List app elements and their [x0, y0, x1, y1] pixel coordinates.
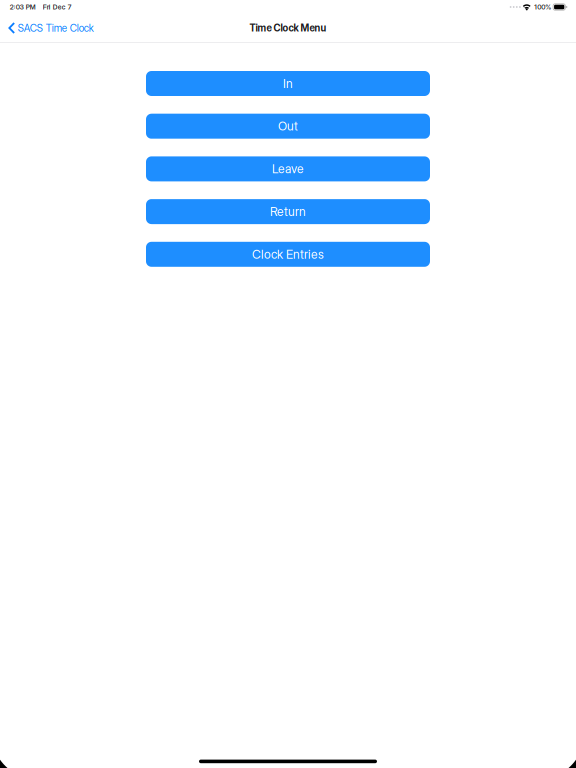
button[interactable]: Leave	[146, 156, 430, 181]
button[interactable]: Out	[146, 114, 430, 139]
staticText: SACS Time Clock	[18, 22, 94, 34]
staticText: Clock Entries	[252, 247, 324, 262]
staticText: 2:03 PM	[10, 3, 36, 11]
staticText: 100%	[534, 3, 551, 11]
staticText: In	[283, 76, 293, 91]
button[interactable]: Clock Entries	[146, 242, 430, 267]
staticText: Out	[278, 119, 298, 134]
staticText: Time Clock Menu	[249, 22, 326, 34]
staticText: Return	[270, 204, 306, 219]
button[interactable]: Return	[146, 199, 430, 224]
button[interactable]: Back to SACS Time Clock	[0, 14, 103, 42]
staticText: Fri Dec 7	[43, 3, 72, 11]
button[interactable]: In	[146, 71, 430, 96]
staticText: Leave	[272, 162, 304, 176]
